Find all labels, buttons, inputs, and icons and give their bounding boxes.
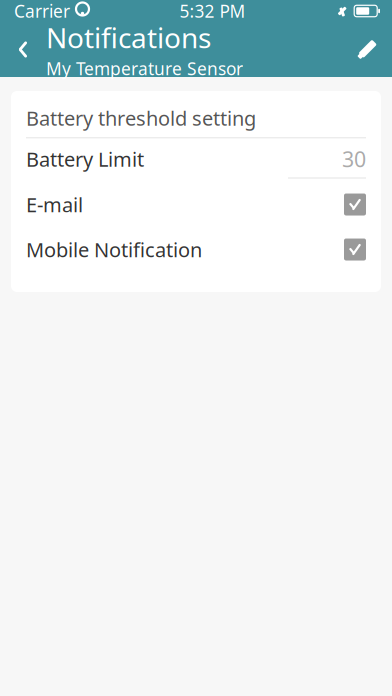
staticText: My Temperature Sensor [46, 57, 243, 80]
button[interactable]: Mobile Notification [11, 227, 381, 272]
staticText: Notifications [46, 19, 211, 56]
staticText: 5:32 PM [180, 0, 246, 22]
staticText: Mobile Notification [26, 236, 202, 263]
staticText: 30 [342, 145, 366, 173]
staticText: Battery threshold setting [26, 105, 256, 131]
staticText: Carrier [14, 0, 70, 22]
button[interactable]: Edit [342, 22, 392, 77]
staticText: E-mail [26, 191, 83, 218]
button[interactable]: E-mail [11, 182, 381, 227]
button[interactable]: Back [0, 22, 46, 77]
staticText: Battery Limit [26, 146, 144, 172]
